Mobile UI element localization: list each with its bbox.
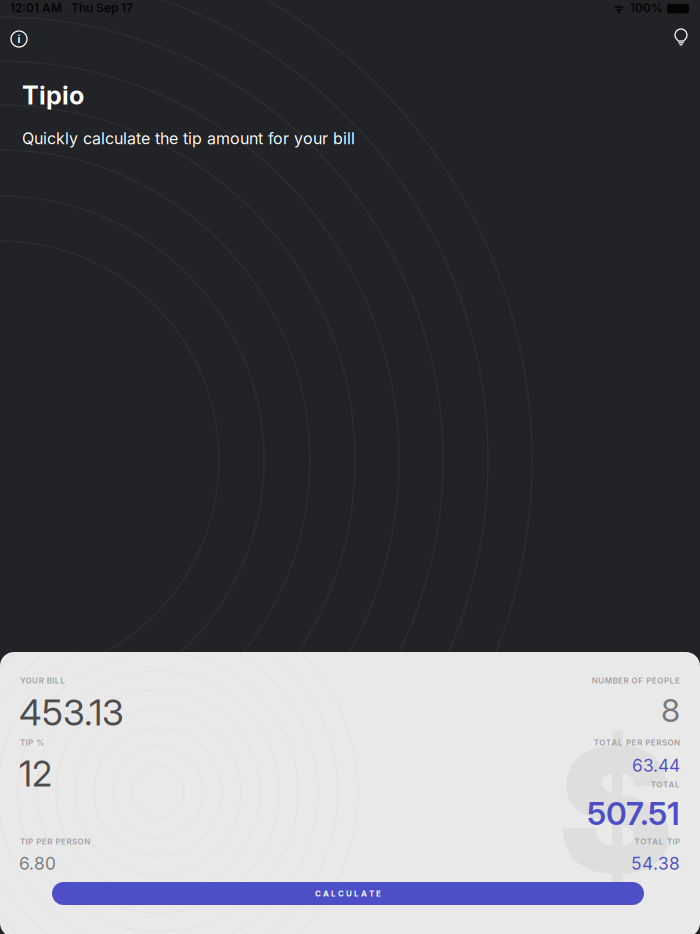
button[interactable]: About Tipio [0,20,38,58]
staticText: 453.13 [19,690,124,734]
button[interactable]: Tipping tips [662,20,700,58]
staticText: NUMBER OF PEOPLE [592,676,680,685]
staticText: YOUR BILL [20,676,65,685]
staticText: TOTAL TIP [635,837,680,846]
staticText: 507.51 [587,794,680,833]
staticText: 12 [19,753,52,795]
staticText: TIP % [20,738,44,747]
staticText: TOTAL PER PERSON [594,738,680,747]
staticText: TIP PER PERSON [20,837,90,846]
button[interactable]: C A L C U L A T E [52,882,644,905]
staticText: $ [558,705,673,915]
staticText: TOTAL [651,780,680,789]
staticText: 6.80 [19,853,56,874]
staticText: 63.44 [632,755,680,776]
staticText: 8 [661,691,680,730]
staticText: 12:01 AM [10,1,62,15]
staticText: Tipio [22,80,84,111]
staticText: i [17,32,20,45]
staticText: 100% [630,1,663,15]
staticText: C A L C U L A T E [315,889,381,898]
staticText: Thu Sep 17 [71,1,133,15]
staticText: Quickly calculate the tip amount for you… [22,129,355,148]
staticText: 54.38 [631,853,680,874]
